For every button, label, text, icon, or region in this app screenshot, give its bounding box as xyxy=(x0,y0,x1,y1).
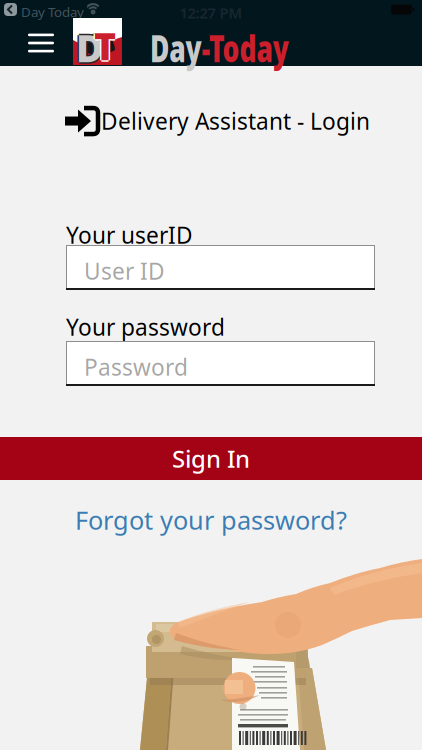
staticText: T xyxy=(94,21,116,71)
staticText: D xyxy=(76,24,103,74)
staticText: Password xyxy=(84,352,188,382)
staticText: T xyxy=(94,22,116,72)
staticText: Day Today xyxy=(21,3,84,21)
staticText: Sign In xyxy=(172,443,250,474)
staticText: User ID xyxy=(84,256,165,286)
staticText: 12:27 PM xyxy=(179,3,242,22)
button[interactable]: Menu xyxy=(24,29,58,57)
staticText: -Today xyxy=(223,23,346,73)
staticText: T xyxy=(95,21,117,71)
staticText: T xyxy=(93,21,115,71)
staticText: D xyxy=(76,23,103,73)
staticText: T xyxy=(94,20,116,69)
staticText: Your userID xyxy=(66,220,193,250)
staticText: Forgot your password? xyxy=(75,503,347,537)
staticText: D xyxy=(77,23,104,73)
button[interactable]: Sign In xyxy=(0,437,422,480)
staticText: Day xyxy=(150,23,223,73)
button[interactable]: Forgot your password? xyxy=(75,503,347,537)
staticText: Your password xyxy=(66,312,225,342)
staticText: D xyxy=(75,23,102,73)
staticText: D xyxy=(76,22,103,71)
staticText: Delivery Assistant - Login xyxy=(101,106,370,136)
